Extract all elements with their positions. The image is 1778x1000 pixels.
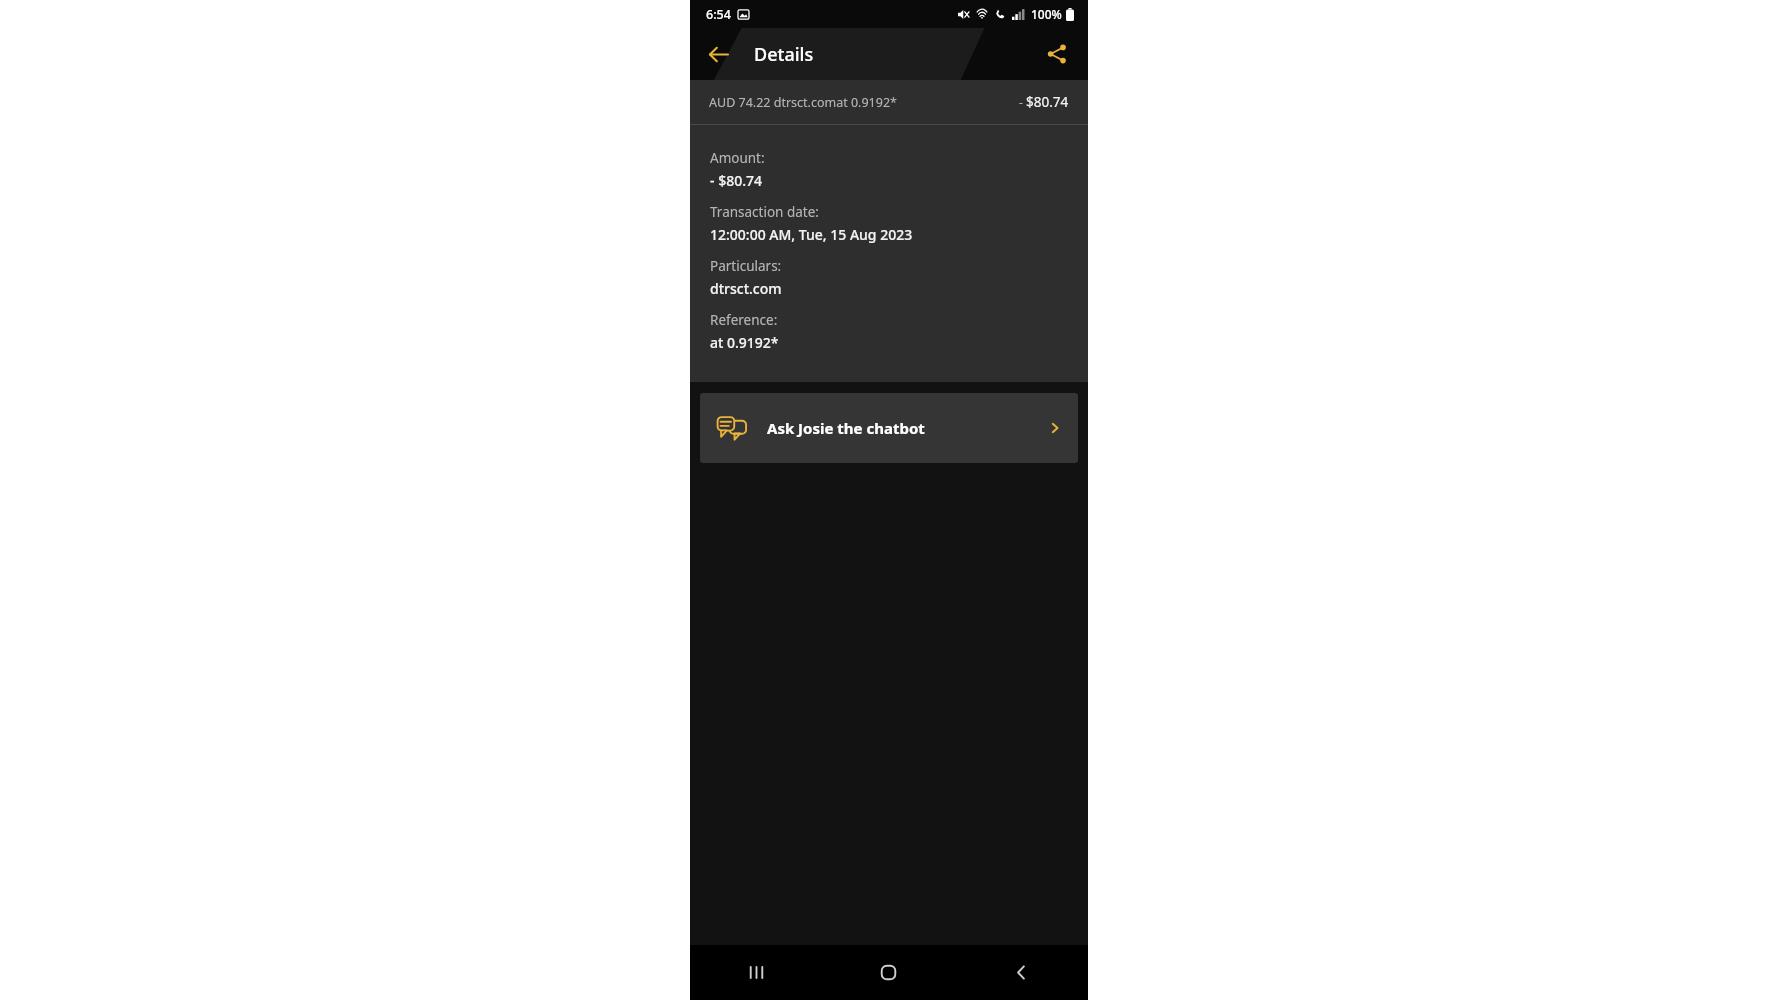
staticText: AUD 74.22 dtrsct.comat 0.9192* — [709, 94, 897, 111]
staticText: 6:54 — [706, 6, 731, 23]
button[interactable]: Recent apps — [690, 945, 822, 1000]
staticText: Particulars: — [710, 257, 782, 275]
staticText: dtrsct.com — [710, 279, 782, 298]
button[interactable]: Back — [696, 32, 740, 76]
button[interactable]: Home — [822, 945, 955, 1000]
staticText: $80.74 — [1026, 93, 1069, 111]
staticText: at 0.9192* — [710, 333, 779, 352]
staticText: Amount: — [710, 149, 765, 167]
staticText: 100% — [1031, 6, 1062, 22]
staticText: Transaction date: — [710, 203, 819, 221]
staticText: - — [1019, 94, 1026, 110]
button[interactable]: Back — [955, 945, 1088, 1000]
staticText: 12:00:00 AM, Tue, 15 Aug 2023 — [710, 225, 913, 244]
staticText: Details — [754, 42, 814, 67]
button[interactable]: Share — [1035, 32, 1079, 76]
staticText: Reference: — [710, 311, 778, 329]
staticText: - $80.74 — [710, 171, 762, 190]
button[interactable]: Ask Josie the chatbot — [700, 393, 1078, 463]
staticText: Ask Josie the chatbot — [767, 418, 925, 438]
